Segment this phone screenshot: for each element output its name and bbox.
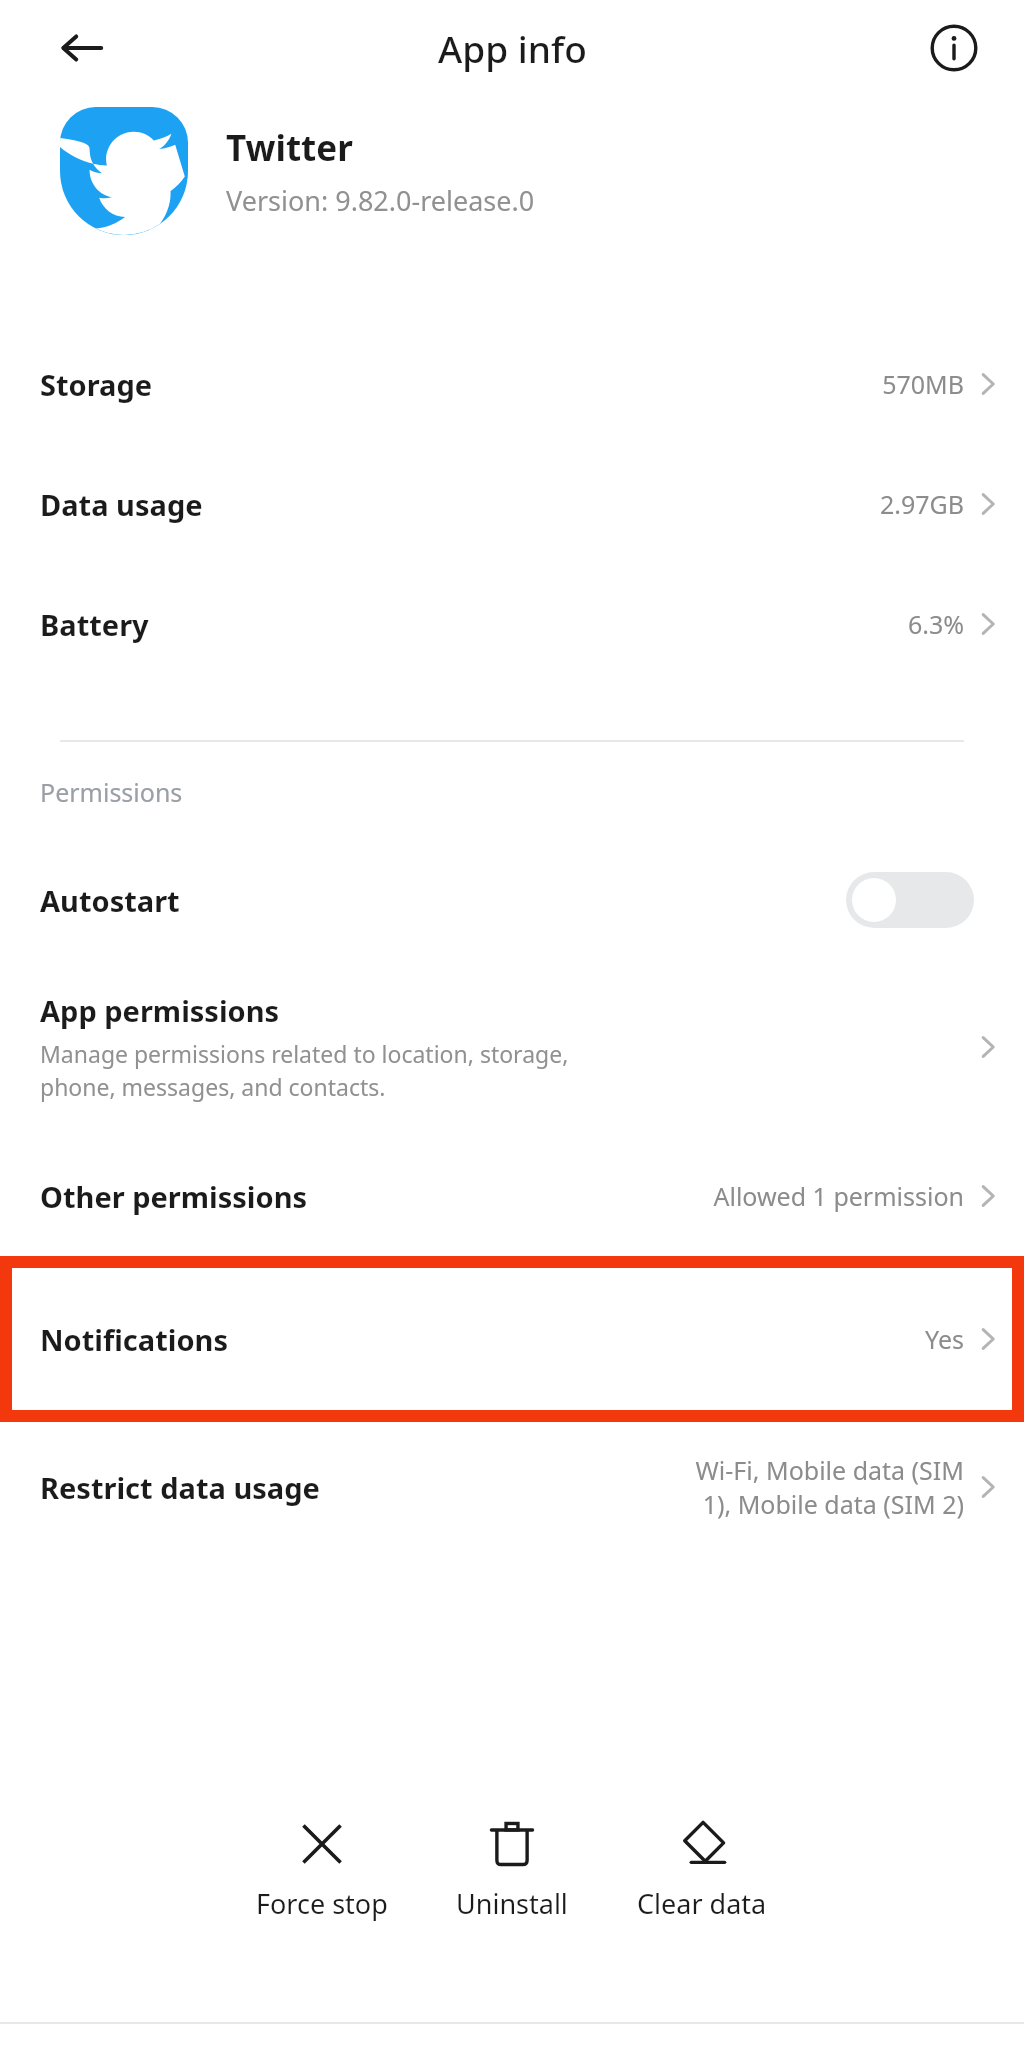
staticText: Storage [40,365,153,404]
staticText: Force stop [256,1885,388,1922]
staticText: Notifications [40,1320,925,1359]
staticText: Yes [925,1322,964,1356]
button[interactable]: Storage [0,324,1024,444]
staticText: Other permissions [40,1177,308,1216]
staticText: Battery [40,605,149,644]
staticText: Uninstall [456,1885,568,1922]
staticText: Twitter [226,124,353,172]
button[interactable]: App details [924,18,984,78]
staticText: Autostart [40,881,846,920]
button[interactable]: Back [52,18,112,78]
staticText: Wi-Fi, Mobile data (SIM 1), Mobile data … [695,1453,964,1521]
staticText: Data usage [40,485,203,524]
staticText: Manage permissions related to location, … [40,1038,569,1103]
staticText: Clear data [637,1885,767,1922]
button[interactable]: Other permissions [0,1136,1024,1256]
staticText: 570MB [882,367,964,401]
staticText: Restrict data usage [40,1468,320,1507]
button[interactable]: Autostart [0,842,1024,958]
staticText: 2.97GB [879,487,964,521]
button[interactable]: App permissions [0,958,1024,1136]
staticText: Allowed 1 permission [713,1179,964,1213]
staticText: Permissions [40,775,183,809]
button[interactable]: Clear data [607,1809,797,1930]
staticText: App info [438,23,587,73]
button[interactable]: Battery [0,564,1024,684]
button[interactable]: Autostart toggle [846,872,974,928]
button[interactable]: Force stop [227,1809,417,1930]
button[interactable]: Notifications [12,1268,1012,1410]
button[interactable]: Uninstall [417,1809,607,1930]
button[interactable]: Restrict data usage [0,1422,1024,1552]
staticText: App permissions [40,991,280,1030]
button[interactable]: Data usage [0,444,1024,564]
staticText: 6.3% [907,607,964,641]
staticText: Version: 9.82.0-release.0 [226,182,535,219]
